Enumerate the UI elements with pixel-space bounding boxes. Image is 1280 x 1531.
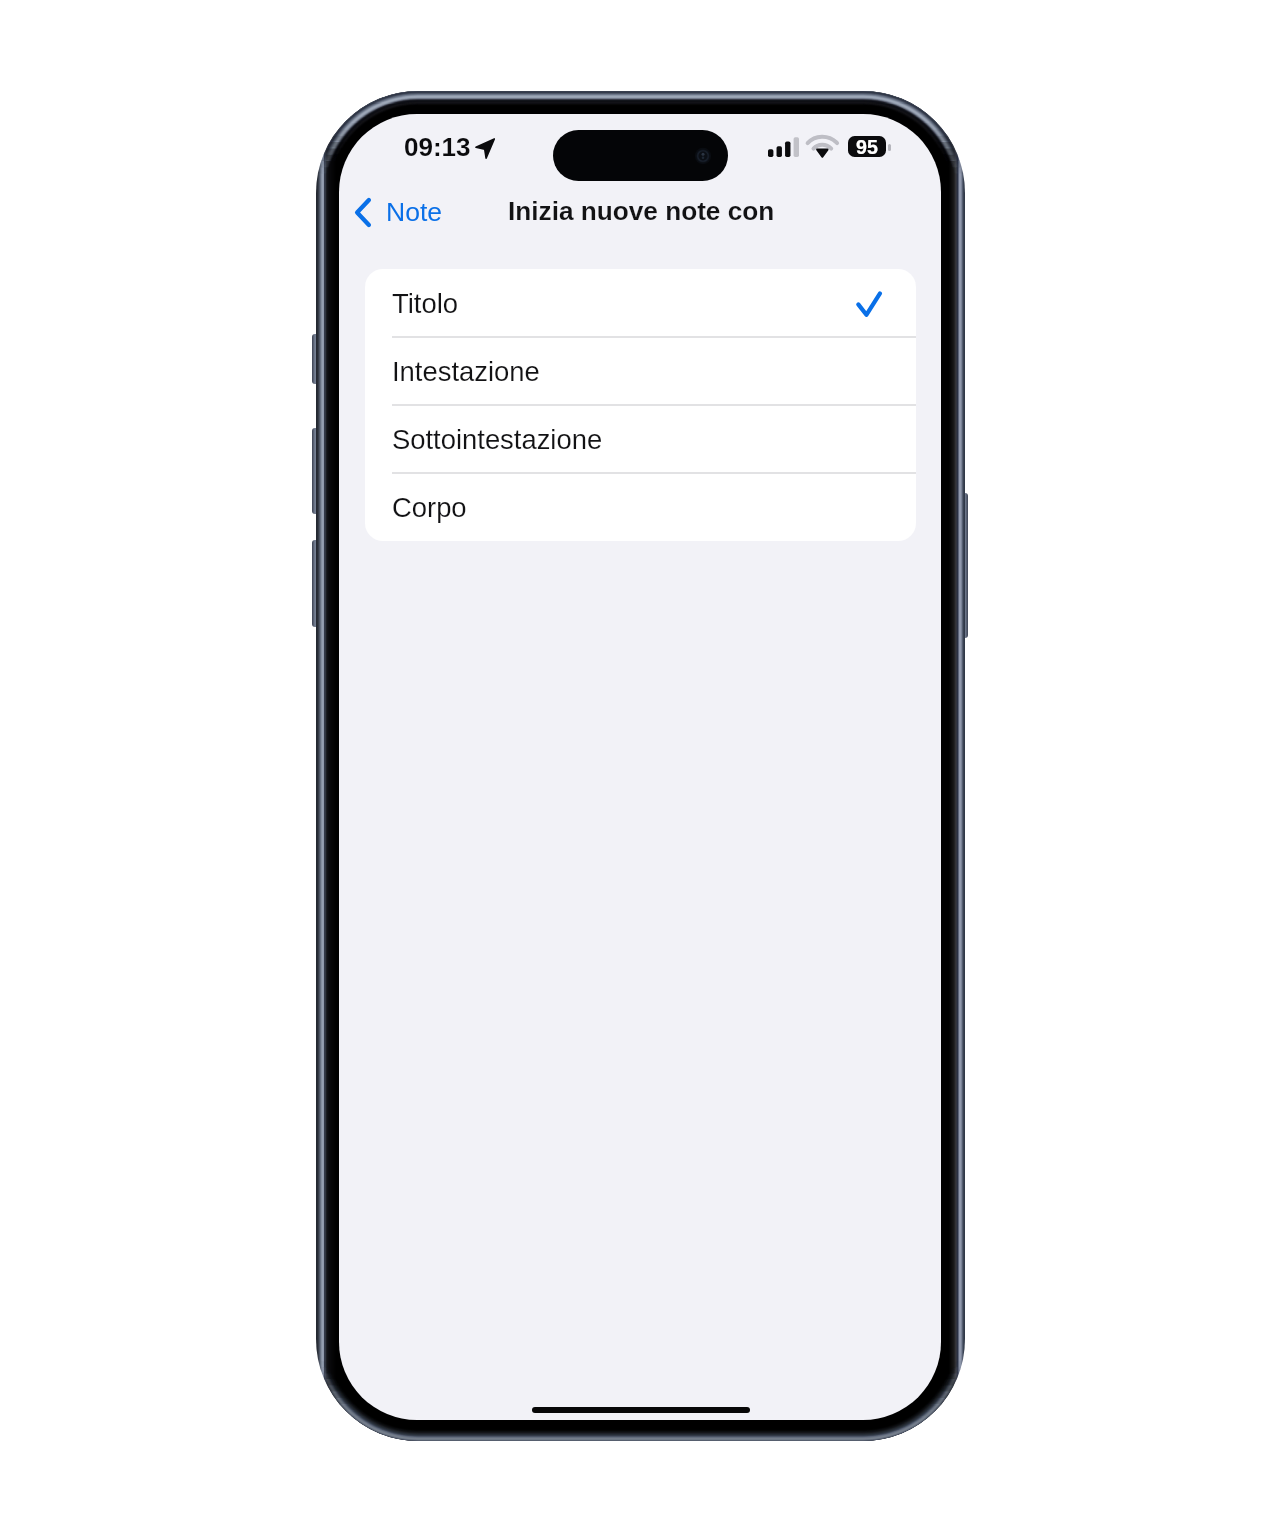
button[interactable]: Titolo	[365, 269, 916, 337]
button[interactable]: Indietro, Note	[347, 190, 452, 234]
staticText: Corpo	[392, 492, 467, 523]
staticText: Note	[386, 197, 442, 227]
button[interactable]: Intestazione	[365, 337, 916, 405]
button[interactable]: Corpo	[365, 473, 916, 541]
staticText: Intestazione	[392, 356, 540, 387]
staticText: 95	[856, 136, 878, 157]
staticText: 09:13	[404, 132, 471, 161]
staticText: Inizia nuove note con	[508, 196, 775, 225]
staticText: Titolo	[392, 288, 458, 319]
button[interactable]: Sottointestazione	[365, 405, 916, 473]
staticText: Sottointestazione	[392, 424, 603, 455]
